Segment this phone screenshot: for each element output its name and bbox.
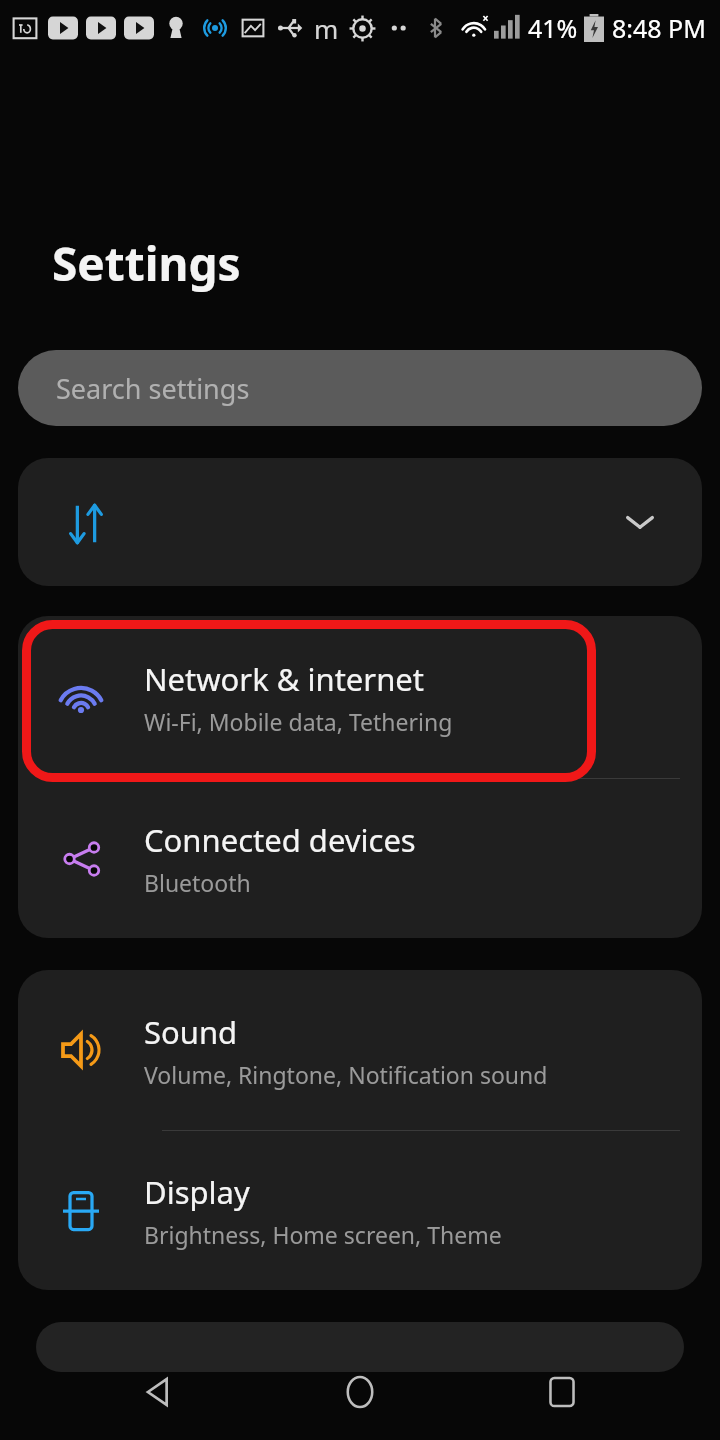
staticText: Settings <box>52 232 241 295</box>
button[interactable]: Search settings <box>18 350 702 426</box>
staticText: Sound <box>144 1011 238 1053</box>
staticText: Wi-Fi, Mobile data, Tethering <box>144 706 453 737</box>
staticText: Search settings <box>56 370 250 407</box>
button[interactable]: Home <box>316 1348 404 1436</box>
button[interactable]: Recents <box>518 1348 606 1436</box>
staticText: Network & internet <box>144 658 424 700</box>
button[interactable]: Display <box>18 1131 702 1290</box>
staticText: 41% <box>528 11 578 45</box>
staticText: 8:48 PM <box>612 11 706 45</box>
staticText: Connected devices <box>144 819 416 861</box>
button[interactable]: Sound <box>18 970 702 1130</box>
button[interactable]: Connected devices <box>18 779 702 938</box>
button[interactable]: Data usage <box>18 458 702 586</box>
button[interactable]: Back <box>114 1348 202 1436</box>
other: Data usage <box>62 500 110 548</box>
staticText: Brightness, Home screen, Theme <box>144 1219 502 1250</box>
staticText: Display <box>144 1171 250 1213</box>
staticText: m <box>314 11 339 46</box>
other: Expand <box>618 500 662 544</box>
staticText: Bluetooth <box>144 867 251 898</box>
staticText: Volume, Ringtone, Notification sound <box>144 1059 548 1090</box>
button[interactable]: Network & internet <box>18 616 702 778</box>
